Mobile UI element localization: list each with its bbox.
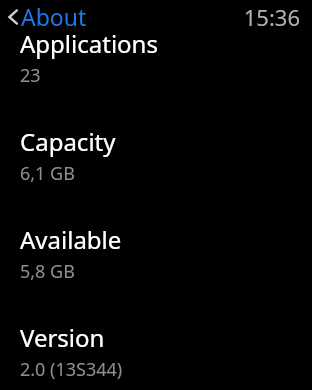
staticText: 23 (20, 63, 41, 88)
staticText: Capacity (20, 125, 116, 158)
staticText: 2.0 (13S344) (20, 357, 123, 382)
staticText: Applications (20, 27, 158, 60)
button[interactable]: Capacity (0, 125, 312, 186)
staticText: 6,1 GB (20, 161, 75, 186)
staticText: 15:36 (243, 2, 300, 32)
button[interactable]: Available (0, 223, 312, 284)
staticText: Available (20, 223, 122, 256)
button[interactable]: Back to Settings (0, 1, 93, 32)
button[interactable]: Version (0, 321, 312, 382)
staticText: Version (20, 321, 105, 354)
staticText: About (21, 1, 87, 32)
button[interactable]: Applications (0, 27, 312, 88)
staticText: 5,8 GB (20, 259, 75, 284)
